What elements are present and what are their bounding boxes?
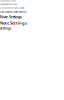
staticText: Settings bbox=[0, 27, 11, 30]
staticText: Use Device Dark Mode bbox=[0, 3, 17, 5]
staticText: Use Device Dark Mode bbox=[0, 6, 24, 9]
staticText: Use Device Dark Mode bbox=[0, 10, 26, 14]
staticText: Note Settings bbox=[0, 20, 27, 26]
staticText: Use Device Dark Mode bbox=[0, 0, 16, 2]
staticText: Note Settings bbox=[0, 14, 22, 19]
